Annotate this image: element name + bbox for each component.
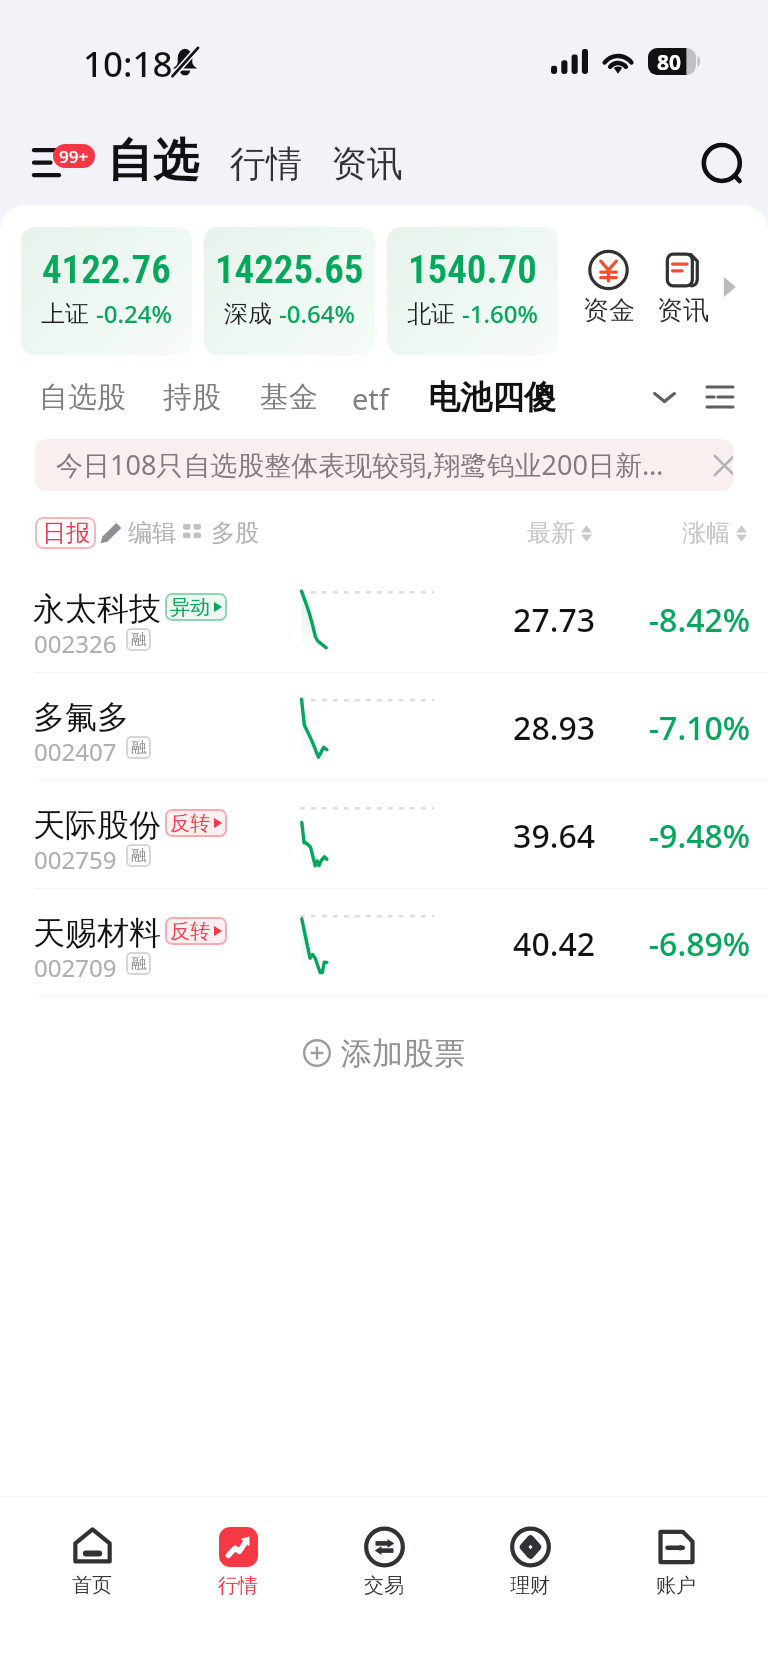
staticText: 融: [131, 738, 146, 757]
staticText: 多股: [211, 518, 259, 548]
button[interactable]: 多氟多: [0, 673, 768, 781]
button[interactable]: 1540.70: [387, 227, 558, 355]
button[interactable]: Dismiss: [707, 448, 733, 482]
button[interactable]: 最新: [527, 517, 592, 549]
staticText: 28.93: [435, 706, 595, 750]
staticText: -7.10%: [600, 706, 750, 750]
staticText: 行情: [218, 1573, 258, 1598]
staticText: 资金: [583, 294, 635, 327]
staticText: -8.42%: [600, 598, 750, 642]
button[interactable]: 资讯: [652, 249, 713, 327]
button[interactable]: Menu: [22, 130, 104, 188]
staticText: 融: [131, 630, 146, 649]
button[interactable]: Search: [688, 132, 750, 194]
button[interactable]: 编辑: [100, 517, 176, 549]
staticText: 4122.76: [42, 247, 171, 293]
staticText: -0.64%: [279, 297, 355, 330]
staticText: 北证: [407, 299, 455, 329]
staticText: 002759: [34, 843, 117, 876]
button[interactable]: 行情: [165, 1497, 311, 1670]
staticText: 1540.70: [408, 247, 537, 293]
button[interactable]: 天赐材料: [0, 889, 768, 997]
staticText: -6.89%: [600, 922, 750, 966]
button[interactable]: 天际股份: [0, 781, 768, 889]
staticText: 资讯: [657, 294, 709, 327]
button[interactable]: 资金: [578, 249, 639, 327]
button[interactable]: 账户: [603, 1497, 749, 1670]
staticText: 永太科技: [33, 589, 161, 629]
staticText: 002326: [34, 627, 117, 660]
staticText: 最新: [527, 518, 575, 548]
staticText: 首页: [72, 1573, 112, 1598]
button[interactable]: 添加股票: [0, 997, 768, 1109]
button[interactable]: 反转: [165, 809, 227, 837]
staticText: 融: [131, 954, 146, 973]
button[interactable]: 多股: [183, 517, 259, 549]
staticText: 99+: [59, 145, 89, 168]
staticText: 添加股票: [341, 1034, 465, 1073]
staticText: 理财: [510, 1573, 550, 1598]
staticText: 融: [131, 846, 146, 865]
staticText: 深成: [224, 299, 272, 329]
staticText: 14225.65: [215, 247, 364, 293]
button[interactable]: 永太科技: [0, 565, 768, 673]
staticText: 天际股份: [33, 805, 161, 845]
button[interactable]: 今日108只自选股整体表现较弱,翔鹭钨业200日新…: [35, 439, 733, 491]
staticText: 002407: [34, 735, 117, 768]
button[interactable]: 交易: [311, 1497, 457, 1670]
button[interactable]: 14225.65: [204, 227, 375, 355]
staticText: 涨幅: [682, 518, 730, 548]
staticText: 反转: [170, 811, 210, 836]
staticText: 27.73: [435, 598, 595, 642]
staticText: 多氟多: [33, 697, 129, 737]
staticText: 账户: [656, 1573, 696, 1598]
staticText: 39.64: [435, 814, 595, 858]
staticText: 编辑: [128, 518, 176, 548]
staticText: 上证: [41, 299, 89, 329]
staticText: -1.60%: [462, 297, 538, 330]
button[interactable]: 反转: [165, 917, 227, 945]
button[interactable]: 理财: [457, 1497, 603, 1670]
staticText: 40.42: [435, 922, 595, 966]
staticText: 天赐材料: [33, 913, 161, 953]
staticText: 异动: [170, 595, 210, 620]
staticText: -9.48%: [600, 814, 750, 858]
button[interactable]: 自选: [0, 0, 92, 58]
button[interactable]: 异动: [165, 593, 227, 621]
staticText: 交易: [364, 1573, 404, 1598]
button[interactable]: 首页: [19, 1497, 165, 1670]
staticText: 10:18: [83, 40, 173, 88]
staticText: 反转: [170, 919, 210, 944]
button[interactable]: Expand group list: [642, 375, 686, 419]
button[interactable]: 涨幅: [682, 517, 747, 549]
button[interactable]: 日报: [35, 517, 96, 549]
staticText: 日报: [42, 518, 90, 548]
button[interactable]: Manage groups: [698, 375, 742, 419]
button[interactable]: 4122.76: [21, 227, 192, 355]
staticText: 002709: [34, 951, 117, 984]
staticText: 80: [657, 48, 682, 75]
staticText: 今日108只自选股整体表现较弱,翔鹭钨业200日新…: [56, 446, 664, 483]
staticText: -0.24%: [96, 297, 172, 330]
